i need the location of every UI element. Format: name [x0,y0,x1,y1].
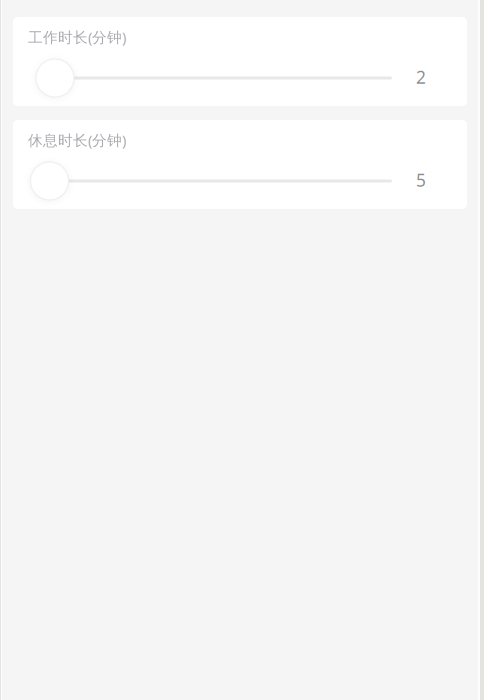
button[interactable]: Adjust duration [36,59,392,97]
staticText: 2 [416,65,426,88]
staticText: 工作时长(分钟) [28,27,126,47]
staticText: 休息时长(分钟) [28,130,126,150]
staticText: 5 [416,168,426,191]
button[interactable]: Adjust duration [30,162,392,200]
